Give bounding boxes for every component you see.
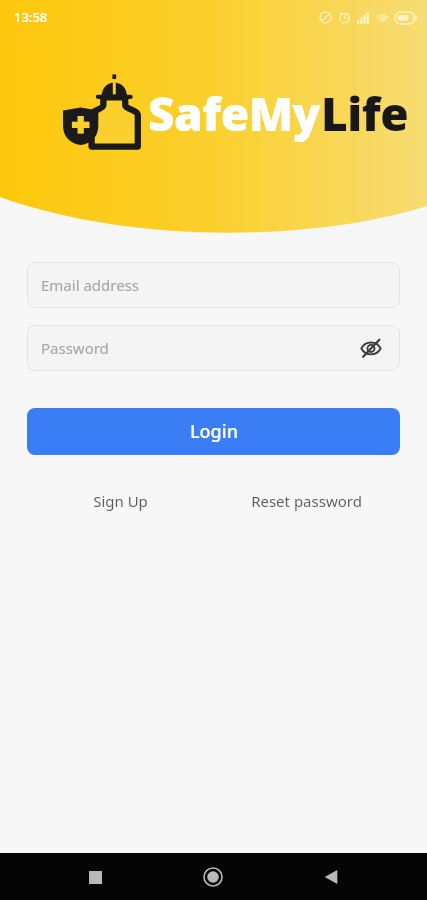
staticText: Login <box>190 419 238 444</box>
staticText: Password <box>41 338 109 358</box>
staticText: 13:58 <box>14 8 48 26</box>
staticText: Email address <box>41 275 140 295</box>
button[interactable]: Password <box>27 325 400 371</box>
button[interactable]: Reset password <box>213 491 400 511</box>
staticText: Sign Up <box>93 491 148 511</box>
button[interactable]: Show password <box>356 333 386 363</box>
button[interactable]: Email address <box>27 262 400 308</box>
button[interactable]: Sign Up <box>27 491 213 511</box>
staticText: Reset password <box>251 491 362 511</box>
button[interactable]: Back <box>309 855 353 899</box>
button[interactable]: Recent apps <box>73 855 117 899</box>
button[interactable]: Login <box>27 408 400 455</box>
staticText: Life <box>321 82 409 145</box>
staticText: SafeMy <box>148 82 321 145</box>
button[interactable]: Home <box>191 855 235 899</box>
